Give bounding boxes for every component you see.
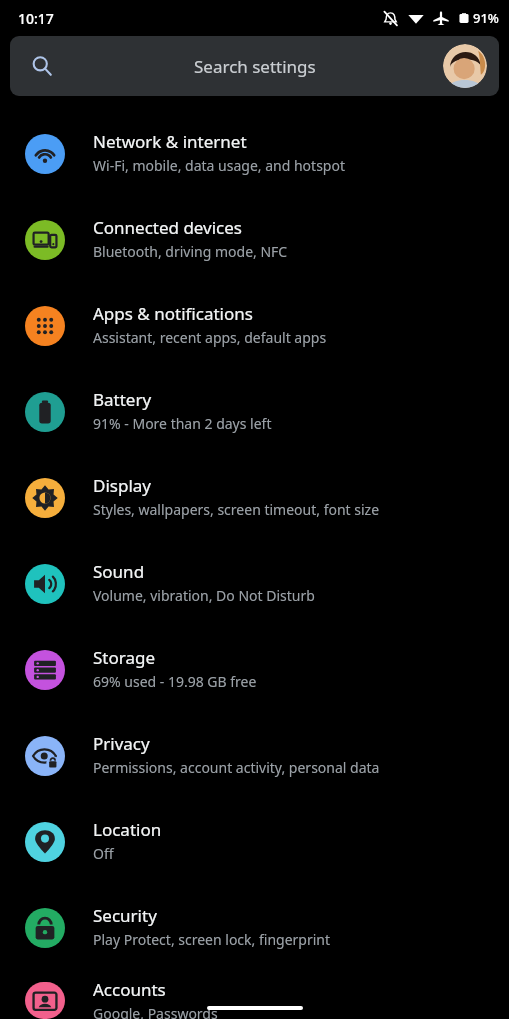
staticText: 69% used - 19.98 GB free (93, 672, 257, 691)
staticText: Accounts (93, 978, 166, 1001)
staticText: Volume, vibration, Do Not Disturb (93, 586, 315, 605)
staticText: Privacy (93, 732, 150, 755)
staticText: Play Protect, screen lock, fingerprint (93, 930, 331, 949)
staticText: Sound (93, 560, 145, 583)
button[interactable]: Network & internet (0, 116, 509, 202)
button[interactable]: Privacy (0, 718, 509, 804)
button[interactable]: Battery (0, 374, 509, 460)
staticText: 91% - More than 2 days left (93, 414, 272, 433)
staticText: Network & internet (93, 130, 247, 153)
staticText: Search settings (194, 55, 316, 78)
staticText: Apps & notifications (93, 302, 253, 325)
button[interactable]: Search (10, 36, 499, 96)
staticText: Location (93, 818, 162, 841)
staticText: Permissions, account activity, personal … (93, 758, 380, 777)
button[interactable]: Display (0, 460, 509, 546)
staticText: 91% (473, 9, 499, 27)
other: Search (31, 55, 53, 77)
staticText: Wi-Fi, mobile, data usage, and hotspot (93, 156, 345, 175)
staticText: 10:17 (18, 9, 54, 28)
staticText: Google, Passwords (93, 1004, 218, 1019)
button[interactable]: Apps & notifications (0, 288, 509, 374)
button[interactable]: Account avatar (443, 44, 487, 88)
staticText: Styles, wallpapers, screen timeout, font… (93, 500, 380, 519)
button[interactable]: Sound (0, 546, 509, 632)
staticText: Security (93, 904, 157, 927)
button[interactable]: Location (0, 804, 509, 890)
staticText: Off (93, 844, 114, 863)
staticText: Battery (93, 388, 152, 411)
button[interactable]: Connected devices (0, 202, 509, 288)
staticText: Display (93, 474, 151, 497)
staticText: Bluetooth, driving mode, NFC (93, 242, 288, 261)
staticText: Storage (93, 646, 156, 669)
button[interactable]: Storage (0, 632, 509, 718)
staticText: Assistant, recent apps, default apps (93, 328, 327, 347)
button[interactable]: Security (0, 890, 509, 976)
button[interactable]: Accounts (0, 976, 509, 1019)
staticText: Connected devices (93, 216, 243, 239)
